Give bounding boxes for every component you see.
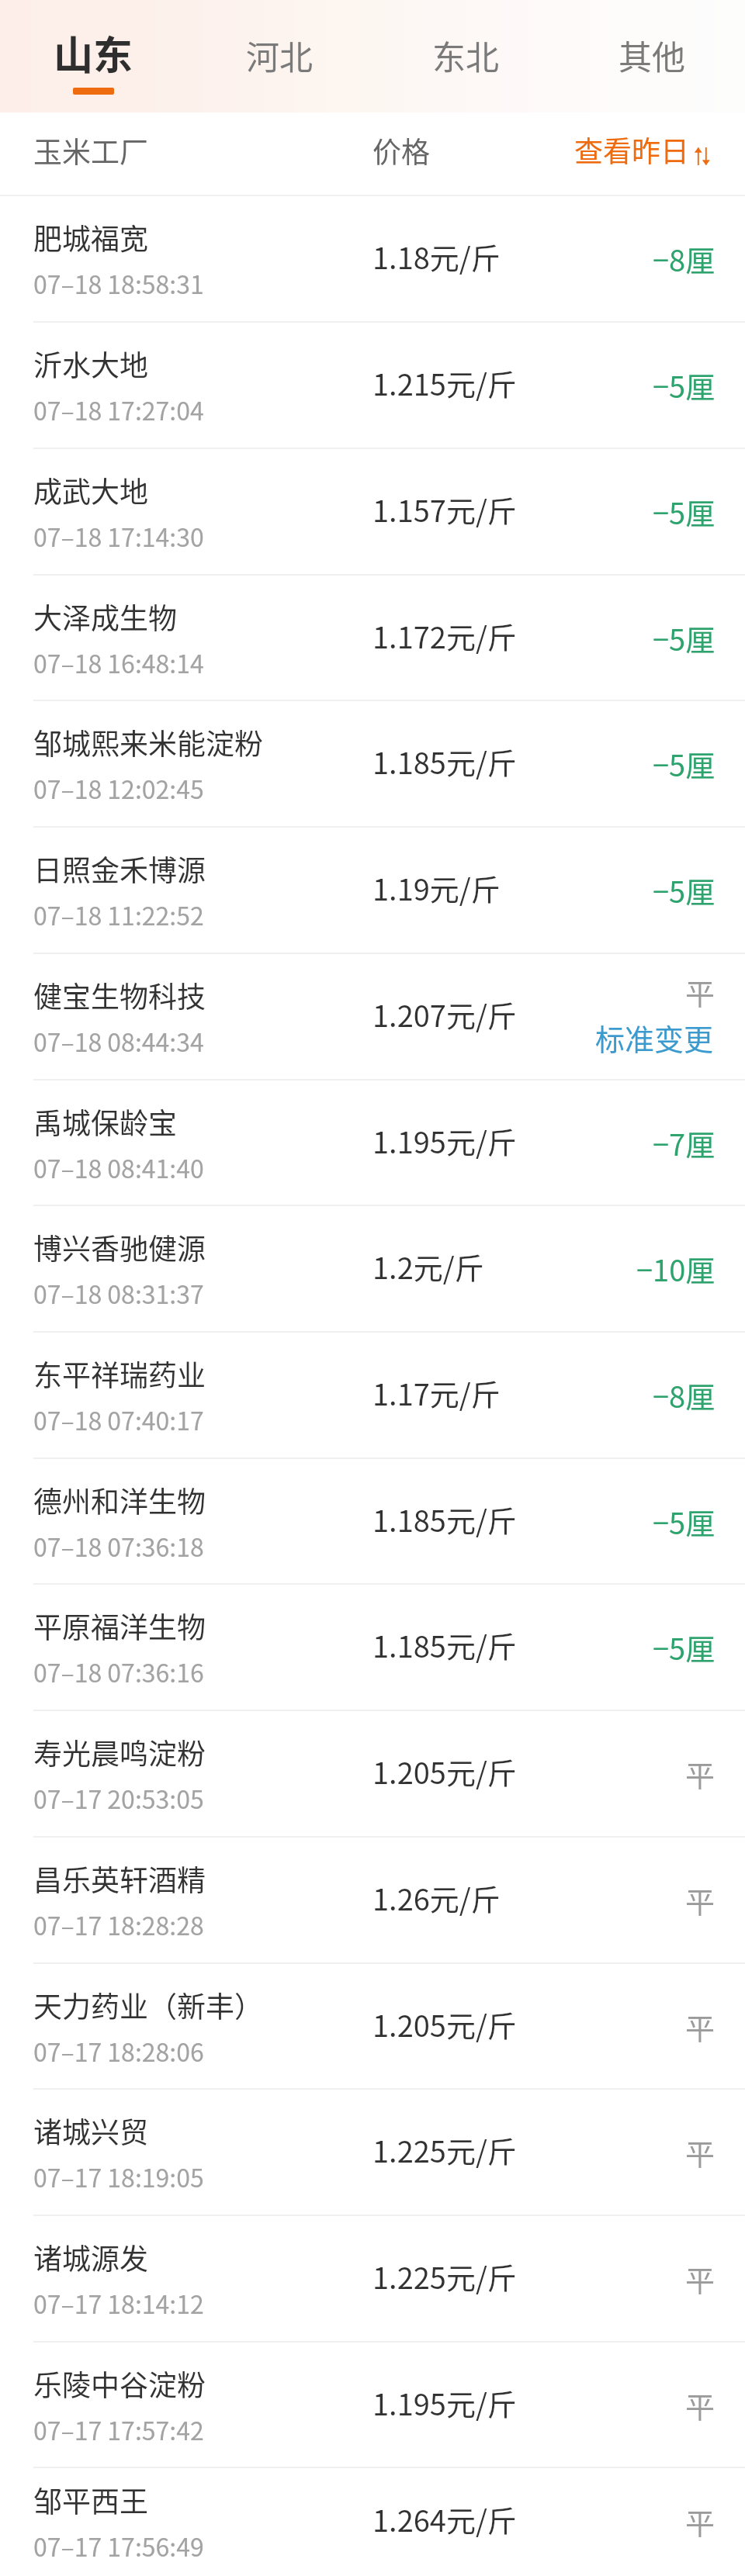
staticText: 1.225元/斤 bbox=[372, 2255, 517, 2298]
button[interactable]: 大泽成生物 bbox=[0, 576, 745, 701]
staticText: 1.26元/斤 bbox=[372, 1876, 501, 1919]
staticText: 07–18 18:58:31 bbox=[33, 265, 204, 301]
button[interactable]: 博兴香驰健源 bbox=[0, 1206, 745, 1333]
staticText: 德州和洋生物 bbox=[33, 1479, 206, 1521]
staticText: 07–18 12:02:45 bbox=[33, 770, 204, 806]
staticText: 1.205元/斤 bbox=[372, 1750, 517, 1793]
staticText: 07–17 18:28:28 bbox=[33, 1907, 204, 1942]
button[interactable]: 昌乐英轩酒精 bbox=[0, 1838, 745, 1964]
staticText: 沂水大地 bbox=[33, 343, 148, 385]
staticText: 诸城兴贸 bbox=[33, 2110, 148, 2152]
staticText: −5厘 bbox=[653, 1626, 716, 1668]
staticText: 昌乐英轩酒精 bbox=[33, 1858, 206, 1900]
staticText: 1.18元/斤 bbox=[372, 235, 501, 278]
staticText: 1.2元/斤 bbox=[372, 1245, 484, 1288]
staticText: 成武大地 bbox=[33, 469, 148, 511]
staticText: 1.215元/斤 bbox=[372, 361, 517, 404]
staticText: 东平祥瑞药业 bbox=[33, 1353, 206, 1395]
button[interactable]: 禹城保龄宝 bbox=[0, 1081, 745, 1206]
staticText: 07–18 07:40:17 bbox=[33, 1402, 204, 1437]
button[interactable]: 东平祥瑞药业 bbox=[0, 1333, 745, 1459]
button[interactable]: 诸城兴贸 bbox=[0, 2090, 745, 2216]
button[interactable]: 平原福洋生物 bbox=[0, 1585, 745, 1711]
staticText: 邹平西王 bbox=[33, 2479, 148, 2521]
button[interactable]: 成武大地 bbox=[0, 449, 745, 576]
button[interactable]: 邹平西王 bbox=[0, 2459, 745, 2576]
button[interactable]: 寿光晨鸣淀粉 bbox=[0, 1711, 745, 1838]
button[interactable]: 德州和洋生物 bbox=[0, 1459, 745, 1585]
staticText: 07–18 07:36:18 bbox=[33, 1528, 204, 1564]
staticText: 诸城源发 bbox=[33, 2236, 148, 2278]
staticText: 平原福洋生物 bbox=[33, 1605, 206, 1647]
staticText: 07–17 18:19:05 bbox=[33, 2159, 204, 2194]
staticText: 平 bbox=[685, 2384, 716, 2426]
staticText: 大泽成生物 bbox=[33, 596, 177, 638]
staticText: 1.17元/斤 bbox=[372, 1371, 501, 1414]
button[interactable]: 天力药业（新丰） bbox=[0, 1964, 745, 2090]
staticText: 禹城保龄宝 bbox=[33, 1101, 177, 1143]
staticText: 其他 bbox=[619, 31, 685, 79]
staticText: 健宝生物科技 bbox=[33, 974, 206, 1016]
staticText: 东北 bbox=[432, 31, 499, 79]
staticText: −5厘 bbox=[653, 742, 716, 785]
staticText: 1.185元/斤 bbox=[372, 1498, 517, 1540]
staticText: 邹城熙来米能淀粉 bbox=[33, 721, 263, 763]
button[interactable]: 其他 bbox=[559, 0, 745, 112]
button[interactable]: 东北 bbox=[372, 0, 559, 112]
staticText: 1.19元/斤 bbox=[372, 866, 501, 909]
staticText: 1.185元/斤 bbox=[372, 1623, 517, 1666]
staticText: 1.195元/斤 bbox=[372, 2381, 517, 2424]
staticText: 平 bbox=[685, 2257, 716, 2300]
staticText: −5厘 bbox=[653, 617, 716, 659]
staticText: 标准变更 bbox=[595, 1016, 714, 1059]
other: Sort by yesterday bbox=[695, 147, 710, 165]
staticText: 查看昨日 bbox=[574, 129, 689, 171]
staticText: −8厘 bbox=[653, 237, 716, 280]
button[interactable]: 邹城熙来米能淀粉 bbox=[0, 701, 745, 828]
staticText: 平 bbox=[685, 2005, 716, 2048]
button[interactable]: 标准变更 bbox=[586, 1008, 745, 1067]
staticText: 平 bbox=[685, 2131, 716, 2173]
staticText: 07–17 17:56:49 bbox=[33, 2528, 204, 2564]
staticText: −5厘 bbox=[653, 490, 716, 533]
staticText: 寿光晨鸣淀粉 bbox=[33, 1731, 206, 1773]
staticText: 玉米工厂 bbox=[33, 130, 148, 171]
staticText: 07–18 16:48:14 bbox=[33, 645, 204, 680]
staticText: 07–18 11:22:52 bbox=[33, 897, 204, 932]
staticText: 1.157元/斤 bbox=[372, 488, 517, 531]
button[interactable]: 健宝生物科技 bbox=[0, 954, 745, 1081]
staticText: −5厘 bbox=[653, 1500, 716, 1543]
staticText: −10厘 bbox=[636, 1247, 716, 1290]
button[interactable]: 山东 bbox=[0, 0, 186, 112]
staticText: 07–18 08:41:40 bbox=[33, 1150, 204, 1185]
staticText: 07–18 17:14:30 bbox=[33, 518, 204, 554]
staticText: 平 bbox=[685, 1879, 716, 1921]
button[interactable]: 乐陵中谷淀粉 bbox=[0, 2343, 745, 2468]
button[interactable]: 查看昨日 bbox=[562, 113, 745, 186]
staticText: 乐陵中谷淀粉 bbox=[33, 2363, 206, 2405]
staticText: 日照金禾博源 bbox=[33, 848, 206, 890]
staticText: −5厘 bbox=[653, 869, 716, 911]
staticText: 平 bbox=[685, 1752, 716, 1795]
staticText: 1.207元/斤 bbox=[372, 993, 517, 1036]
staticText: 平 bbox=[685, 2500, 716, 2543]
staticText: 1.185元/斤 bbox=[372, 740, 517, 783]
button[interactable]: 肥城福宽 bbox=[0, 196, 745, 323]
staticText: 河北 bbox=[246, 31, 313, 79]
staticText: 1.195元/斤 bbox=[372, 1119, 517, 1162]
staticText: 1.172元/斤 bbox=[372, 614, 517, 657]
staticText: 07–17 17:57:42 bbox=[33, 2412, 204, 2447]
button[interactable]: 诸城源发 bbox=[0, 2216, 745, 2343]
staticText: 07–18 08:31:37 bbox=[33, 1275, 204, 1311]
staticText: −7厘 bbox=[653, 1122, 716, 1164]
staticText: 天力药业（新丰） bbox=[33, 1984, 263, 2026]
staticText: −5厘 bbox=[653, 364, 716, 406]
button[interactable]: 沂水大地 bbox=[0, 323, 745, 449]
staticText: 07–18 17:27:04 bbox=[33, 392, 204, 427]
staticText: 07–17 20:53:05 bbox=[33, 1780, 204, 1816]
staticText: 1.205元/斤 bbox=[372, 2003, 517, 2045]
staticText: 肥城福宽 bbox=[33, 216, 148, 258]
button[interactable]: 日照金禾博源 bbox=[0, 828, 745, 954]
staticText: 07–17 18:28:06 bbox=[33, 2033, 204, 2069]
button[interactable]: 河北 bbox=[186, 0, 372, 112]
